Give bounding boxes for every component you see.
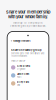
button[interactable]: Alex Rivera <box>11 63 45 71</box>
button[interactable]: Riley Park <box>11 79 45 87</box>
staticText: Organizer <box>17 68 26 70</box>
staticText: recommendations. <box>11 55 28 57</box>
staticText: Alex Rivera <box>17 65 30 68</box>
button[interactable]: Manage members <box>8 39 48 42</box>
staticText: FAMILY GROUP <box>11 60 25 62</box>
button[interactable]: Jamie Chen <box>11 71 45 79</box>
staticText: Manage members <box>13 39 30 42</box>
staticText: Riley Park <box>17 81 29 84</box>
staticText: Share your membership <box>6 9 50 14</box>
staticText: with your whole family. <box>8 14 48 19</box>
staticText: Invite up to five people. <box>13 21 43 24</box>
staticText: Everyone gets their own library and <box>11 52 44 55</box>
staticText: Jamie Chen <box>17 73 29 76</box>
staticText: Child <box>17 84 20 86</box>
staticText: Everyone gets a private account. <box>9 24 46 27</box>
staticText: Share one Family group <box>11 49 42 52</box>
staticText: Adult <box>17 76 22 78</box>
